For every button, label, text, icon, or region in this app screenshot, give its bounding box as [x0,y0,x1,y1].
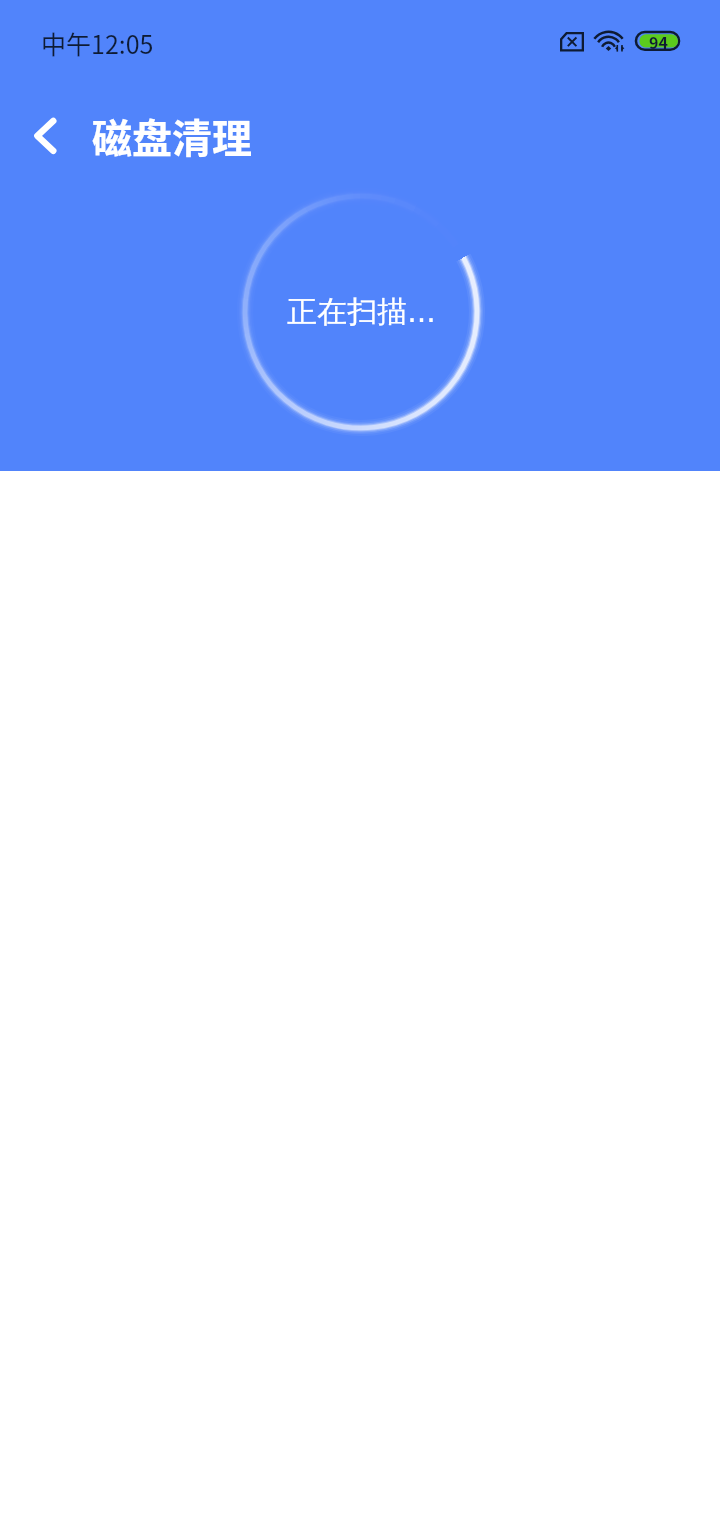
staticText: 磁盘清理 [92,107,252,165]
staticText: 正在扫描... [287,293,436,331]
staticText: 94 [649,30,668,51]
button[interactable]: 返回 [13,104,77,168]
staticText: 中午12:05 [41,25,154,61]
